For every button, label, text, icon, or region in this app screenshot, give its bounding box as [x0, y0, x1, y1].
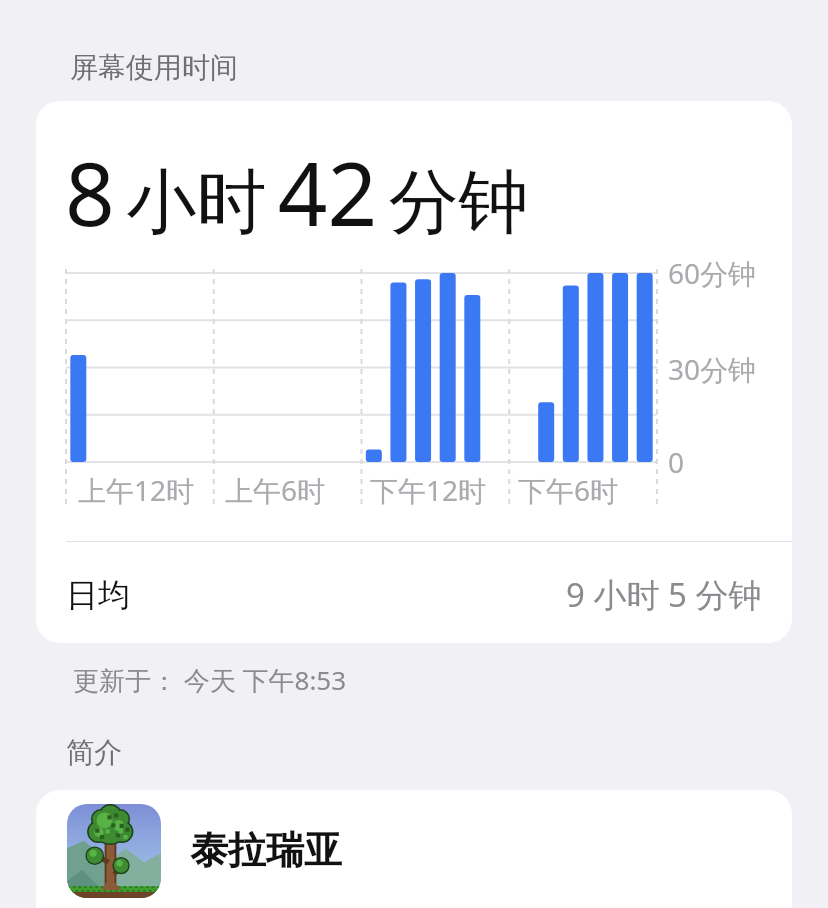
staticText: 60分钟 — [668, 254, 757, 292]
button[interactable]: 8 小时 42 分钟 — [36, 101, 792, 643]
staticText: 下午12时 — [370, 471, 487, 509]
staticText: 日均 — [66, 575, 130, 615]
staticText: 上午6时 — [225, 471, 326, 509]
staticText: 简介 — [66, 735, 122, 770]
staticText: 更新于： 今天 下午8:53 — [73, 662, 347, 698]
staticText: 0 — [668, 443, 685, 481]
staticText: 屏幕使用时间 — [70, 50, 238, 85]
staticText: 9 小时 5 分钟 — [566, 572, 762, 617]
staticText: 下午6时 — [518, 471, 619, 509]
staticText: 8 小时 42 分钟 — [65, 133, 529, 251]
staticText: 泰拉瑞亚 — [190, 826, 342, 874]
button[interactable]: 泰拉瑞亚 — [36, 790, 792, 908]
staticText: 上午12时 — [78, 471, 195, 509]
staticText: 30分钟 — [668, 350, 757, 388]
